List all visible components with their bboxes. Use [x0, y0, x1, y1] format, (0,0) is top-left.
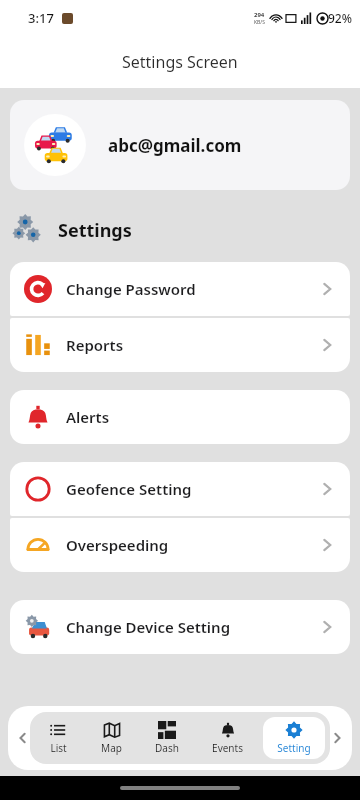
other: Next: [330, 731, 344, 745]
staticText: Overspeeding: [66, 535, 169, 555]
button[interactable]: Setting: [263, 717, 325, 759]
button[interactable]: Overspeeding: [10, 518, 350, 572]
other: Previous: [16, 731, 30, 745]
staticText: Settings Screen: [122, 51, 238, 73]
staticText: 3:17: [28, 9, 54, 27]
staticText: Events: [212, 741, 243, 755]
staticText: 294: [254, 11, 265, 19]
staticText: Dash: [155, 741, 179, 755]
staticText: Change Password: [66, 279, 196, 299]
staticText: Setting: [277, 741, 311, 755]
button[interactable]: Geofence Setting: [10, 462, 350, 516]
button[interactable]: List: [35, 717, 81, 759]
button[interactable]: Change Device Setting: [10, 600, 350, 654]
staticText: Reports: [66, 335, 124, 355]
button[interactable]: Map: [87, 717, 136, 759]
button[interactable]: abc@gmail.com: [10, 100, 350, 190]
button[interactable]: Change Password: [10, 262, 350, 316]
staticText: abc@gmail.com: [108, 134, 242, 157]
button[interactable]: Events: [198, 717, 257, 759]
button[interactable]: Alerts: [10, 390, 350, 444]
staticText: Geofence Setting: [66, 479, 192, 499]
staticText: 92%: [328, 10, 352, 26]
button[interactable]: Dash: [141, 717, 193, 759]
staticText: List: [50, 741, 67, 755]
button[interactable]: Reports: [10, 318, 350, 372]
staticText: Change Device Setting: [66, 617, 231, 637]
staticText: KB/S: [254, 19, 265, 26]
staticText: Alerts: [66, 407, 110, 427]
staticText: Settings: [58, 218, 132, 243]
staticText: Map: [101, 741, 122, 755]
